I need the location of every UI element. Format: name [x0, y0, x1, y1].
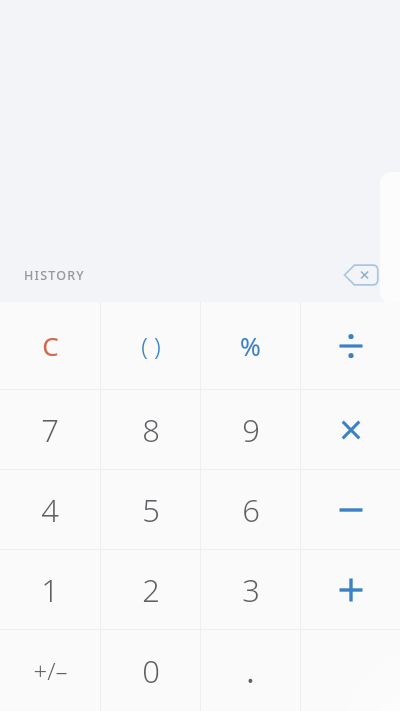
- staticText: ( ): [141, 329, 161, 362]
- button[interactable]: 2: [101, 550, 200, 629]
- button[interactable]: 8: [101, 390, 200, 469]
- staticText: 0: [142, 650, 160, 692]
- staticText: 5: [142, 489, 160, 531]
- button[interactable]: Plus: [301, 550, 400, 629]
- staticText: %: [240, 329, 261, 363]
- staticText: .: [246, 650, 255, 692]
- staticText: 8: [142, 409, 160, 451]
- button[interactable]: %: [201, 302, 300, 389]
- button[interactable]: +/–: [0, 630, 100, 711]
- staticText: 9: [242, 409, 260, 451]
- button[interactable]: 3: [201, 550, 300, 629]
- staticText: HISTORY: [24, 267, 85, 284]
- button[interactable]: Minus: [301, 470, 400, 549]
- staticText: 4: [41, 489, 59, 531]
- staticText: 2: [142, 569, 160, 611]
- button[interactable]: HISTORY: [24, 267, 85, 284]
- button[interactable]: .: [201, 630, 300, 711]
- button[interactable]: Backspace: [338, 258, 384, 292]
- staticText: +/–: [33, 654, 68, 687]
- staticText: 6: [242, 489, 260, 531]
- button[interactable]: ( ): [101, 302, 200, 389]
- button[interactable]: 6: [201, 470, 300, 549]
- button[interactable]: 7: [0, 390, 100, 469]
- staticText: 1: [41, 569, 59, 611]
- button[interactable]: Multiply: [301, 390, 400, 469]
- button[interactable]: 0: [101, 630, 200, 711]
- button[interactable]: 4: [0, 470, 100, 549]
- button[interactable]: 1: [0, 550, 100, 629]
- button[interactable]: 9: [201, 390, 300, 469]
- button[interactable]: Divide: [301, 302, 400, 389]
- staticText: 7: [41, 409, 59, 451]
- button[interactable]: C: [0, 302, 100, 389]
- staticText: 3: [242, 569, 260, 611]
- button[interactable]: 5: [101, 470, 200, 549]
- staticText: C: [42, 328, 59, 363]
